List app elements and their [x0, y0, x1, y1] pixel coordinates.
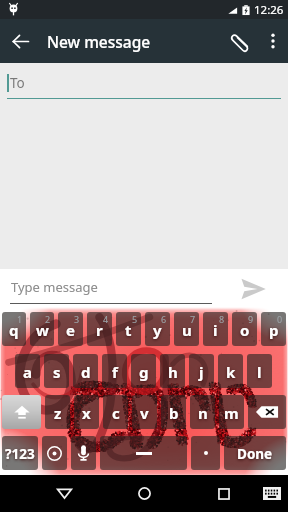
staticText: w — [36, 320, 49, 340]
staticText: New message — [47, 31, 151, 52]
staticText: 12:26 — [254, 2, 284, 18]
staticText: 1 — [17, 313, 23, 325]
button[interactable]: a — [15, 354, 40, 388]
staticText: m — [224, 403, 239, 423]
button[interactable]: v — [132, 395, 157, 429]
button[interactable]: f — [102, 354, 127, 388]
button[interactable]: i — [203, 312, 228, 346]
staticText: q — [9, 320, 19, 340]
staticText: r — [96, 320, 103, 340]
staticText: v — [140, 403, 149, 423]
button[interactable]: t — [116, 312, 141, 346]
button[interactable]: l — [247, 354, 272, 388]
staticText: g — [139, 362, 149, 382]
button[interactable] — [248, 395, 286, 429]
staticText: j — [199, 362, 204, 382]
button[interactable]: Send — [229, 269, 277, 307]
staticText: c — [112, 403, 120, 423]
staticText: h — [168, 362, 178, 382]
button[interactable]: Navigate up — [0, 19, 40, 63]
staticText: d — [81, 362, 91, 382]
button[interactable]: Hide keyboard — [44, 475, 84, 512]
staticText: p — [269, 320, 279, 340]
button[interactable]: q — [2, 312, 26, 346]
staticText: f — [112, 362, 118, 382]
button[interactable] — [100, 436, 187, 470]
staticText: s — [53, 362, 61, 382]
button[interactable]: u — [174, 312, 199, 346]
staticText: 3 — [74, 313, 80, 325]
button[interactable]: Switch keyboard — [256, 475, 288, 512]
button[interactable] — [42, 436, 67, 470]
staticText: 4 — [103, 313, 109, 325]
staticText: b — [169, 403, 179, 423]
button[interactable]: m — [219, 395, 244, 429]
staticText: l — [257, 362, 262, 382]
button[interactable]: Done — [224, 436, 286, 470]
button[interactable]: z — [45, 395, 70, 429]
staticText: u — [182, 320, 192, 340]
button[interactable]: r — [87, 312, 112, 346]
staticText: a — [23, 362, 32, 382]
staticText: x — [82, 403, 91, 423]
staticText: 0 — [277, 313, 283, 325]
staticText: i — [213, 320, 218, 340]
button[interactable] — [2, 395, 41, 429]
button[interactable]: d — [73, 354, 98, 388]
staticText: 2 — [45, 313, 51, 325]
button[interactable] — [191, 436, 220, 470]
staticText: 9 — [248, 313, 254, 325]
button[interactable]: g — [131, 354, 156, 388]
button[interactable]: j — [189, 354, 214, 388]
staticText: ?123 — [5, 445, 35, 463]
button[interactable]: ?123 — [2, 436, 38, 470]
staticText: o — [240, 320, 250, 340]
staticText: z — [54, 403, 62, 423]
button[interactable] — [71, 436, 96, 470]
button[interactable]: Attach file — [222, 19, 258, 63]
staticText: Done — [237, 445, 273, 463]
staticText: k — [226, 362, 236, 382]
button[interactable]: y — [145, 312, 170, 346]
staticText: e — [66, 320, 75, 340]
button[interactable]: o — [232, 312, 257, 346]
button[interactable]: More options — [258, 19, 288, 63]
staticText: 8 — [219, 313, 225, 325]
staticText: Type message — [11, 278, 98, 296]
staticText: 6 — [161, 313, 167, 325]
staticText: 5 — [132, 313, 138, 325]
button[interactable]: e — [58, 312, 83, 346]
button[interactable]: b — [161, 395, 186, 429]
button[interactable]: p — [261, 312, 286, 346]
button[interactable]: s — [44, 354, 69, 388]
staticText: 7 — [190, 313, 196, 325]
staticText: n — [198, 403, 208, 423]
button[interactable]: x — [74, 395, 99, 429]
button[interactable]: k — [218, 354, 243, 388]
button[interactable]: Home — [124, 475, 164, 512]
button[interactable]: w — [30, 312, 54, 346]
button[interactable]: c — [103, 395, 128, 429]
staticText: y — [153, 320, 162, 340]
staticText: To — [10, 74, 25, 92]
button[interactable]: Recent apps — [204, 475, 244, 512]
staticText: t — [125, 320, 132, 340]
button[interactable]: h — [160, 354, 185, 388]
button[interactable]: n — [190, 395, 215, 429]
